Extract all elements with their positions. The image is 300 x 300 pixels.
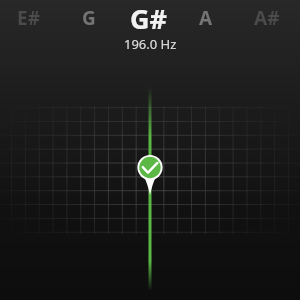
staticText: G#: [130, 0, 167, 36]
staticText: A#: [254, 5, 280, 31]
button[interactable]: G: [59, 0, 119, 36]
button[interactable]: A: [176, 0, 236, 36]
staticText: E#: [17, 5, 40, 31]
staticText: A: [199, 5, 213, 31]
staticText: G: [82, 5, 96, 31]
button[interactable]: E#: [0, 0, 58, 36]
staticText: 196.0 Hz: [124, 35, 177, 53]
button[interactable]: A#: [237, 0, 297, 36]
button[interactable]: G#: [118, 0, 178, 36]
